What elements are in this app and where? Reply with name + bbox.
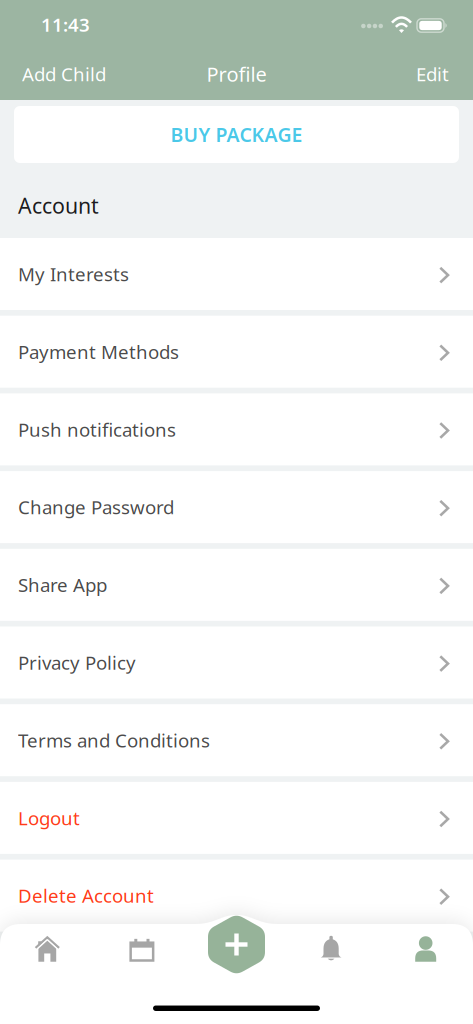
staticText: My Interests	[18, 262, 129, 286]
button[interactable]: Push notifications	[0, 393, 473, 465]
staticText: Account	[18, 191, 99, 220]
staticText: Push notifications	[18, 417, 176, 442]
staticText: Payment Methods	[18, 339, 179, 364]
staticText: Privacy Policy	[18, 650, 136, 675]
staticText: Change Password	[18, 495, 174, 519]
button[interactable]: Change Password	[0, 471, 473, 543]
button[interactable]: Delete Account	[0, 860, 473, 932]
button[interactable]: Profile	[378, 926, 473, 972]
button[interactable]: Logout	[0, 782, 473, 854]
button[interactable]: Payment Methods	[0, 316, 473, 388]
staticText: Add Child	[22, 62, 106, 86]
staticText: Delete Account	[18, 883, 154, 908]
button[interactable]: Edit	[416, 58, 449, 86]
staticText: Profile	[206, 61, 266, 87]
button[interactable]: Terms and Conditions	[0, 704, 473, 776]
staticText: Logout	[18, 805, 80, 830]
button[interactable]: Notifications	[284, 926, 378, 972]
staticText: BUY PACKAGE	[170, 121, 302, 148]
button[interactable]: Share App	[0, 549, 473, 621]
staticText: 11:43	[41, 12, 90, 37]
button[interactable]: Add	[208, 914, 265, 975]
staticText: Terms and Conditions	[18, 728, 210, 753]
button[interactable]: My Interests	[0, 238, 473, 310]
button[interactable]: Home	[0, 926, 95, 972]
staticText: Edit	[416, 62, 449, 86]
staticText: Share App	[18, 572, 107, 597]
button[interactable]: Privacy Policy	[0, 626, 473, 698]
button[interactable]: Add Child	[22, 58, 106, 86]
button[interactable]: BUY PACKAGE	[14, 106, 459, 163]
button[interactable]: Calendar	[95, 926, 189, 972]
